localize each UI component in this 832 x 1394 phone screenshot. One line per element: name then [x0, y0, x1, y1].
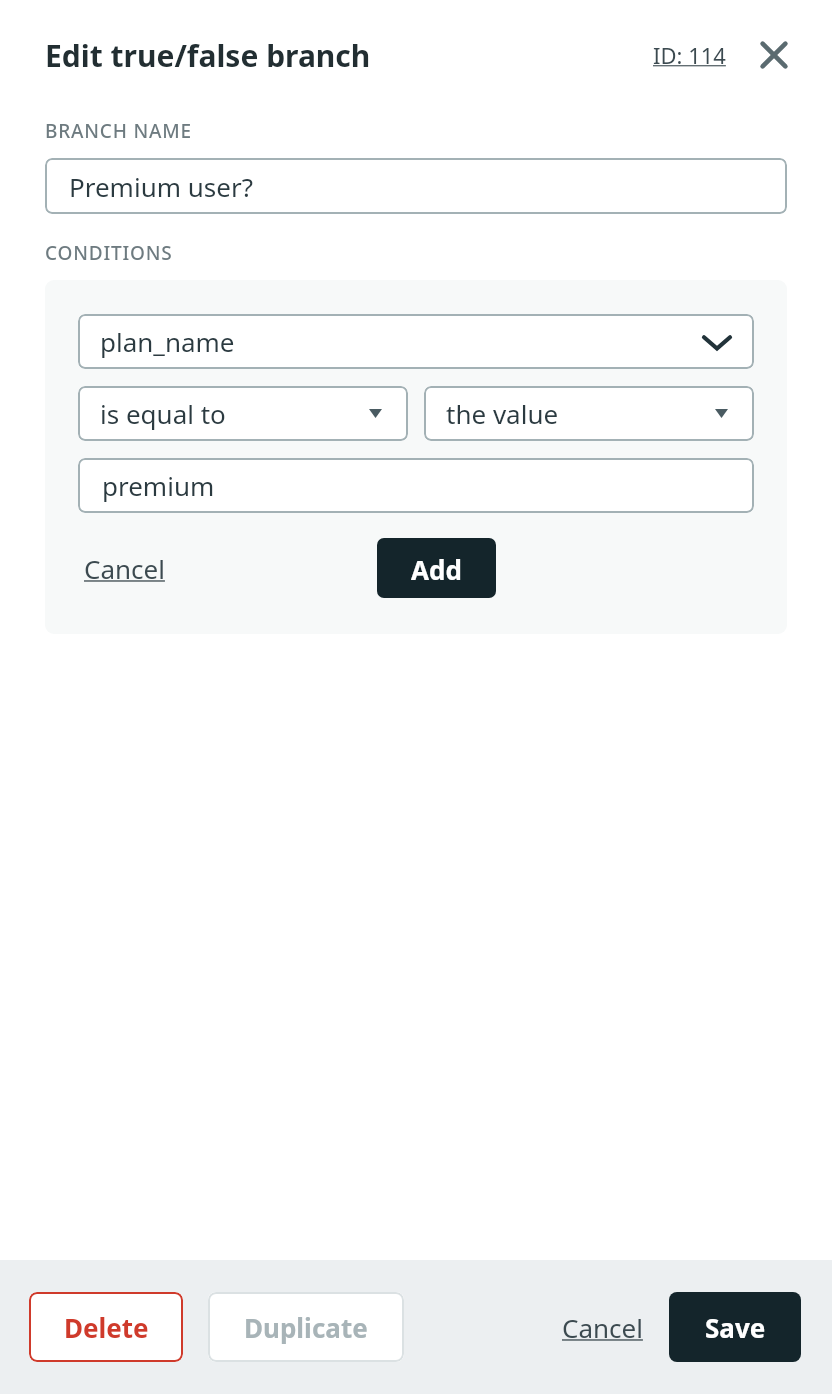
button[interactable]: Add [377, 538, 496, 598]
staticText: CONDITIONS [45, 240, 173, 266]
staticText: Add [411, 552, 462, 584]
staticText: Premium user? [69, 169, 253, 204]
other: Expand field list [702, 327, 732, 357]
staticText: is equal to [100, 396, 226, 431]
staticText: Cancel [84, 551, 165, 586]
staticText: BRANCH NAME [45, 118, 192, 144]
button[interactable]: Save [669, 1292, 801, 1362]
staticText: the value [446, 396, 559, 431]
button[interactable]: Duplicate [208, 1292, 404, 1362]
button[interactable]: Delete [29, 1292, 183, 1362]
button[interactable]: Close [752, 33, 796, 77]
staticText: Duplicate [244, 1310, 368, 1345]
staticText: Edit true/false branch [45, 35, 371, 76]
button[interactable]: Cancel [554, 1300, 651, 1355]
button[interactable]: Premium user? [45, 158, 787, 214]
button[interactable]: premium [78, 458, 754, 513]
staticText: Cancel [562, 1310, 643, 1345]
staticText: premium [102, 468, 215, 503]
button[interactable]: ID: 114 [649, 32, 730, 78]
staticText: Delete [64, 1310, 149, 1345]
staticText: plan_name [100, 324, 235, 359]
button[interactable]: plan_name [78, 314, 754, 369]
staticText: ID: 114 [653, 40, 726, 70]
button[interactable]: the value [424, 386, 754, 441]
button[interactable]: Cancel [78, 543, 171, 594]
staticText: Save [705, 1310, 766, 1345]
button[interactable]: is equal to [78, 386, 408, 441]
